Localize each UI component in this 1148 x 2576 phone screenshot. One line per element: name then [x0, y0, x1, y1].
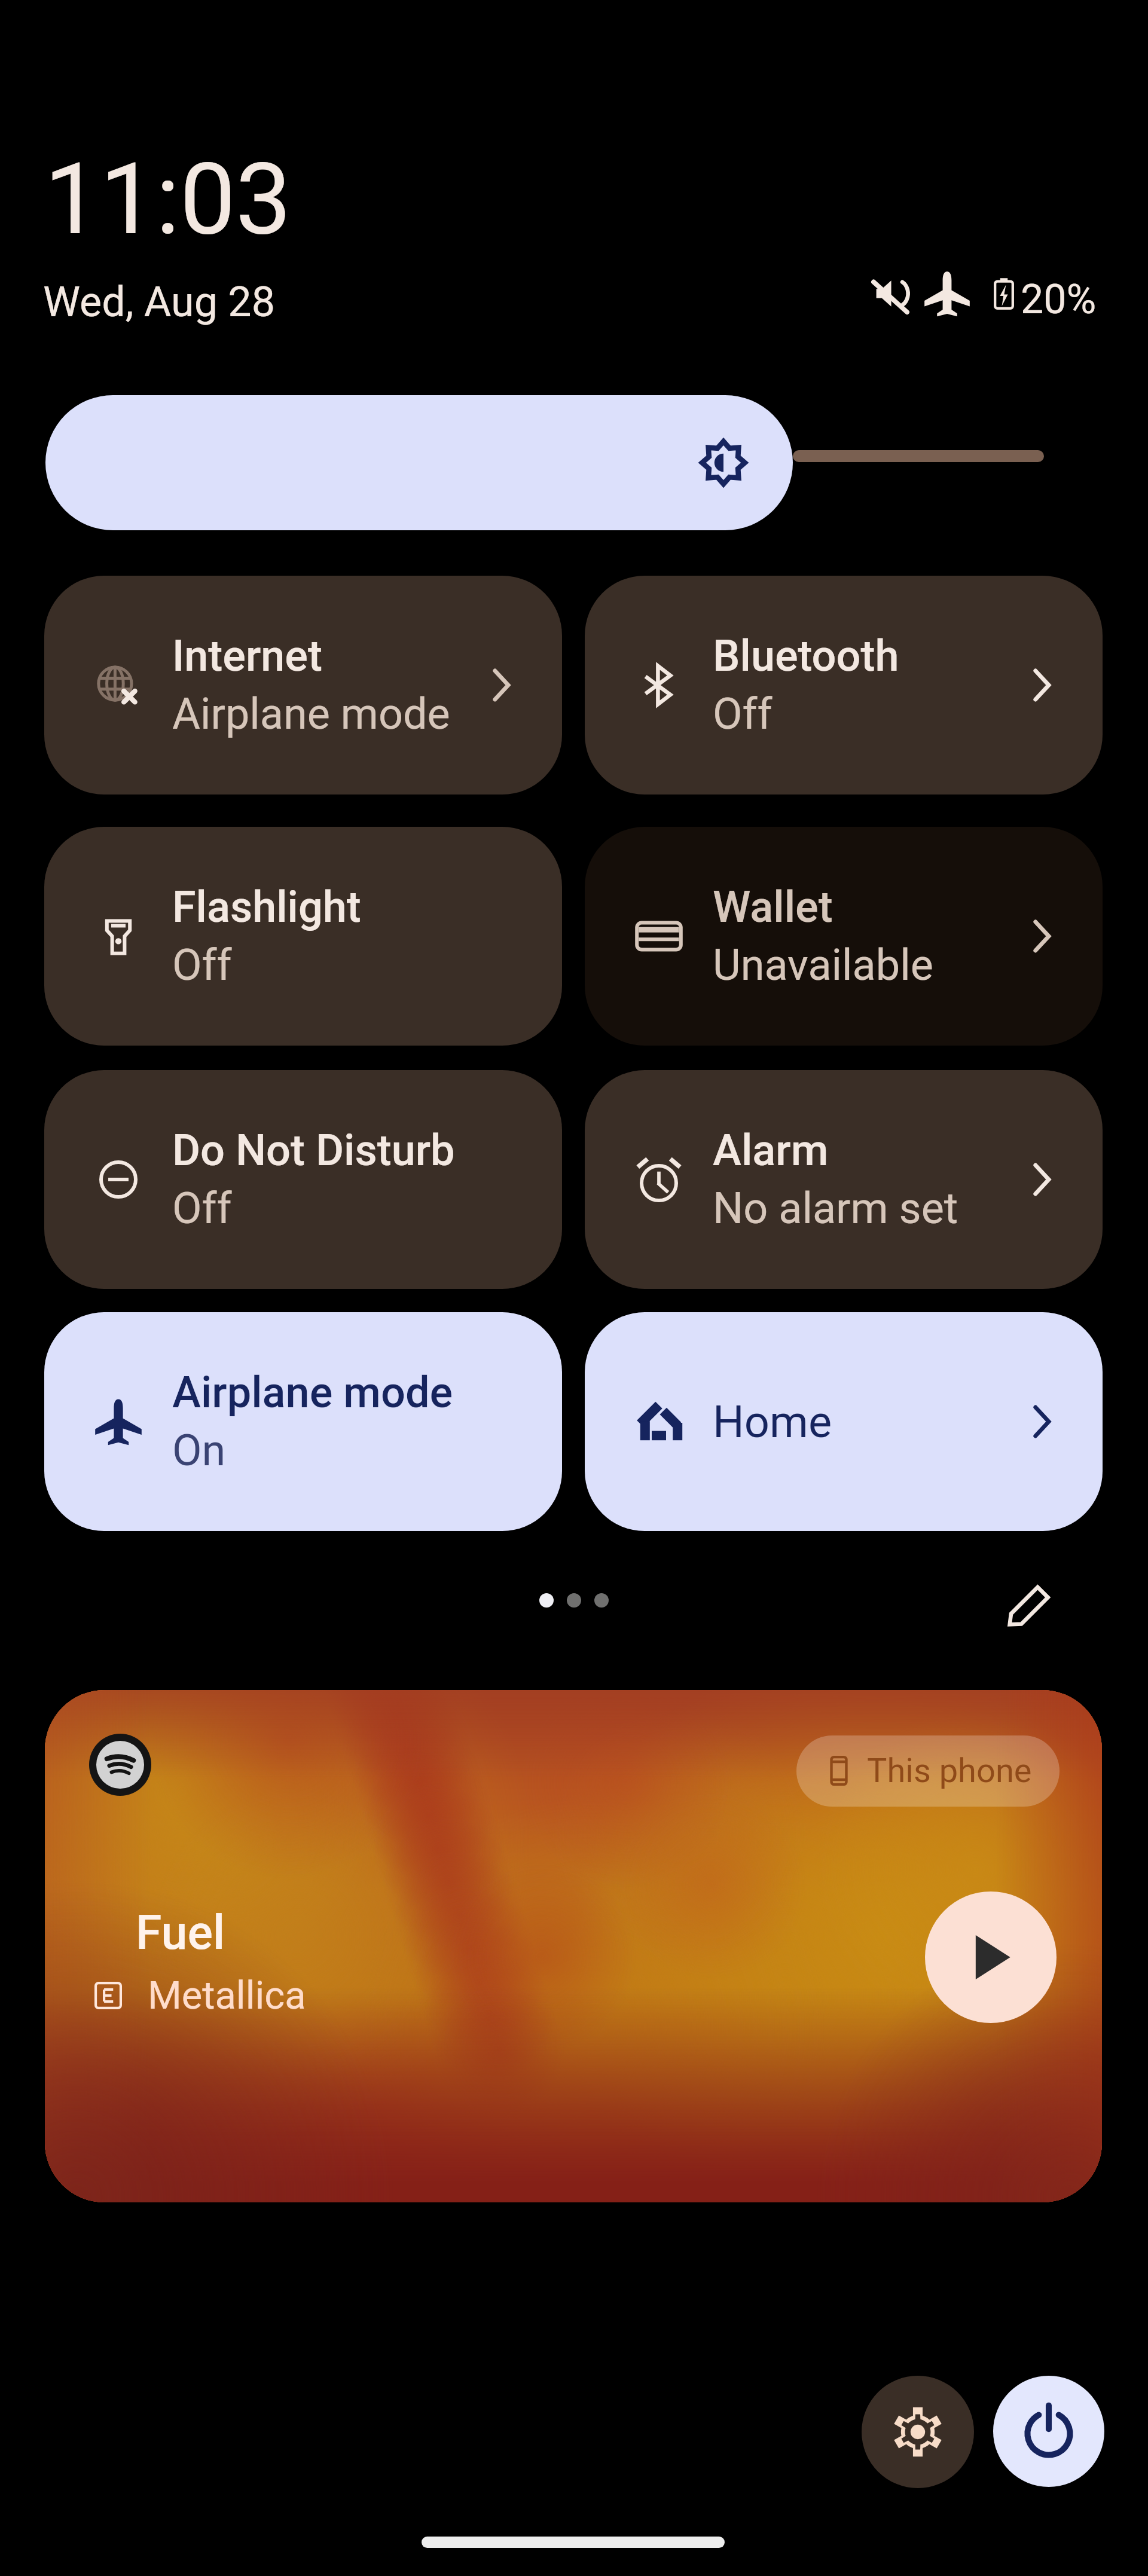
staticText: Off — [713, 689, 773, 739]
button[interactable]: Brightness — [45, 395, 793, 530]
button[interactable]: Internet — [44, 576, 562, 795]
staticText: Do Not Disturb — [172, 1125, 455, 1175]
button[interactable]: Flashlight — [44, 827, 562, 1046]
button[interactable]: This phone — [45, 1690, 1102, 2202]
button[interactable]: Edit tiles — [1007, 1581, 1054, 1627]
button[interactable]: Home — [585, 1312, 1103, 1531]
staticText: Wed, Aug 28 — [43, 277, 276, 326]
staticText: Bluetooth — [713, 631, 899, 681]
staticText: Unavailable — [713, 940, 933, 990]
button[interactable]: Bluetooth — [585, 576, 1103, 795]
button[interactable]: Settings — [862, 2376, 974, 2488]
staticText: Airplane mode — [172, 1367, 453, 1417]
button[interactable]: Airplane mode — [44, 1312, 562, 1531]
staticText: Off — [172, 1183, 232, 1233]
staticText: Internet — [172, 631, 322, 681]
staticText: No alarm set — [713, 1183, 958, 1233]
button[interactable]: Wallet — [585, 827, 1103, 1046]
staticText: Home — [713, 1396, 832, 1448]
staticText: Wallet — [713, 882, 833, 932]
button[interactable]: Alarm — [585, 1070, 1103, 1289]
staticText: 20% — [1021, 276, 1097, 323]
staticText: Fuel — [136, 1905, 225, 1961]
staticText: Flashlight — [172, 882, 361, 932]
staticText: 11:03 — [44, 141, 292, 258]
button[interactable]: Play — [925, 1891, 1057, 2023]
staticText: Metallica — [148, 1973, 306, 2018]
staticText: Off — [172, 940, 232, 990]
staticText: Airplane mode — [172, 689, 450, 739]
staticText: Alarm — [713, 1125, 829, 1175]
button[interactable]: Do Not Disturb — [44, 1070, 562, 1289]
staticText: On — [172, 1425, 226, 1475]
button[interactable]: This phone — [796, 1735, 1060, 1807]
button[interactable]: Power — [993, 2376, 1104, 2487]
staticText: This phone — [867, 1751, 1032, 1790]
